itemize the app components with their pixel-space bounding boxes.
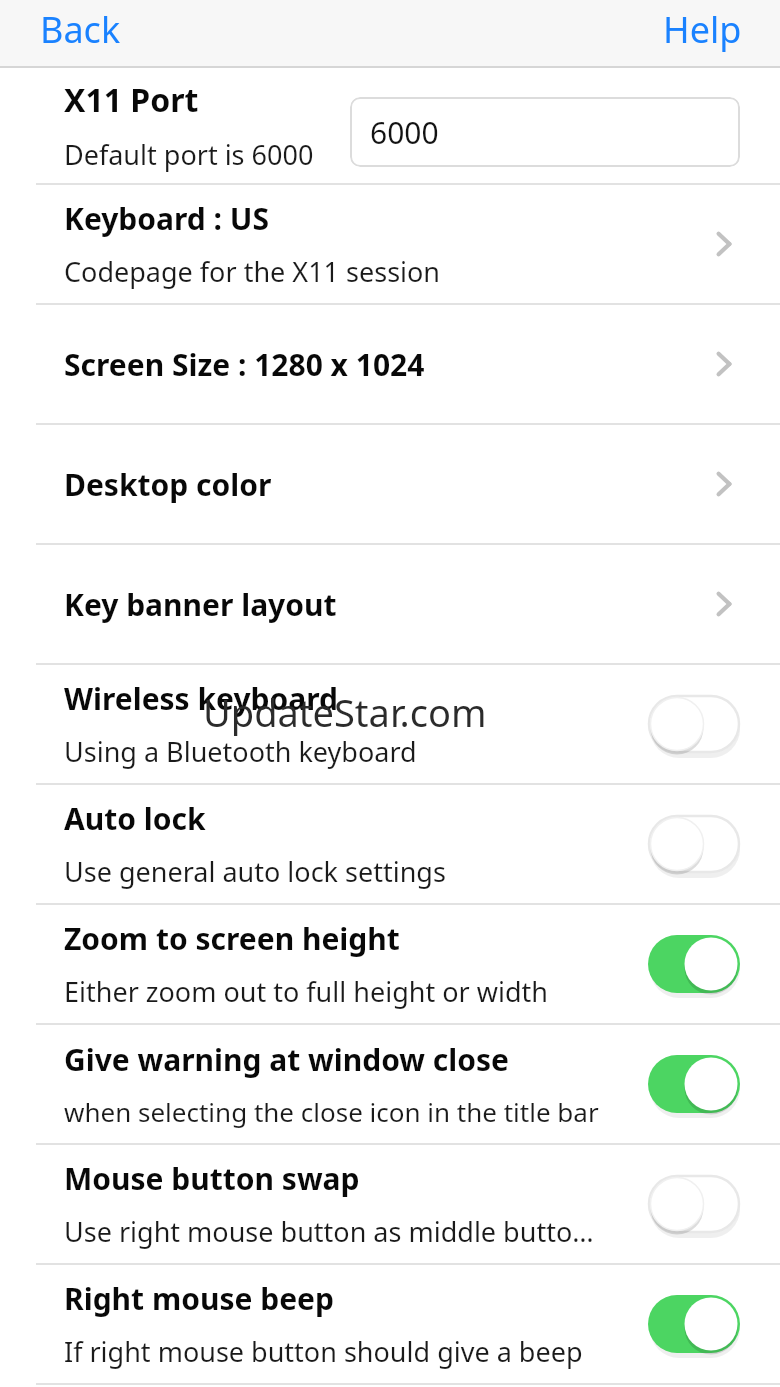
staticText: Auto lock [64, 798, 206, 839]
button[interactable]: Screen Size : 1280 x 1024 [0, 305, 780, 423]
other: On [648, 935, 740, 993]
other: On [648, 1055, 740, 1113]
button[interactable]: Auto lock [0, 785, 780, 903]
staticText: Using a Bluetooth keyboard [64, 733, 417, 770]
staticText: Use general auto lock settings [64, 853, 446, 890]
button[interactable]: Key banner layout [0, 545, 780, 663]
staticText: when selecting the close icon in the tit… [64, 1094, 599, 1129]
staticText: Either zoom out to full height or width [64, 973, 548, 1010]
staticText: Screen Size : 1280 x 1024 [64, 344, 425, 385]
staticText: X11 Port [64, 78, 199, 122]
staticText: Give warning at window close [64, 1039, 509, 1080]
staticText: Help [663, 5, 742, 54]
button[interactable]: Wireless keyboard [0, 665, 780, 783]
staticText: Use right mouse button as middle butto… [64, 1213, 594, 1250]
staticText: Default port is 6000 [64, 136, 314, 173]
staticText: Key banner layout [64, 584, 337, 625]
staticText: Keyboard : US [64, 198, 270, 239]
staticText: Back [40, 5, 121, 54]
staticText: Right mouse beep [64, 1278, 334, 1319]
button[interactable]: Right mouse beep [0, 1265, 780, 1383]
staticText: Wireless keyboard [64, 678, 338, 719]
staticText: 6000 [370, 112, 439, 153]
button[interactable]: 6000 [350, 97, 740, 167]
button[interactable]: Keyboard : US [0, 185, 780, 303]
other: On [648, 1295, 740, 1353]
staticText: Codepage for the X11 session [64, 253, 441, 290]
button[interactable]: Help [643, 0, 780, 58]
other: Off [648, 1175, 740, 1233]
staticText: Mouse button swap [64, 1158, 360, 1199]
staticText: Desktop color [64, 464, 272, 505]
other: Off [648, 695, 740, 753]
button[interactable]: Mouse button swap [0, 1145, 780, 1263]
staticText: UpdateStar.com [203, 686, 487, 738]
button[interactable]: Zoom to screen height [0, 905, 780, 1023]
other: Off [648, 815, 740, 873]
button[interactable]: Give warning at window close [0, 1025, 780, 1143]
staticText: Zoom to screen height [64, 918, 400, 959]
button[interactable]: Desktop color [0, 425, 780, 543]
button[interactable]: Back [0, 0, 141, 58]
staticText: If right mouse button should give a beep [64, 1333, 583, 1370]
